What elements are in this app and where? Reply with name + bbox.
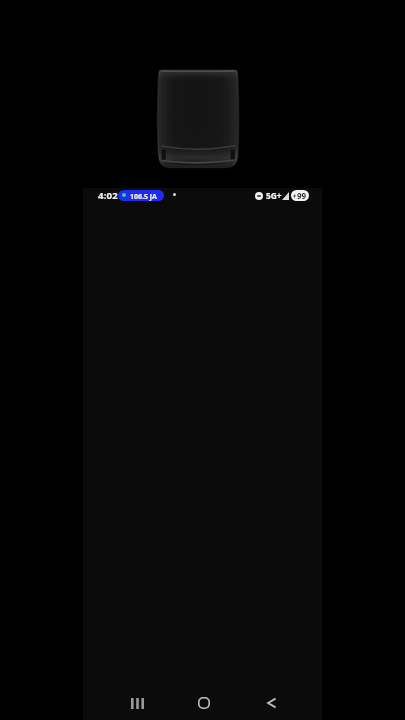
button[interactable]: App content (83, 188, 322, 720)
button[interactable]: Home (187, 686, 221, 720)
other: Do not disturb on (255, 192, 263, 200)
button[interactable]: Back (254, 686, 288, 720)
other: Mobile signal strength (282, 192, 289, 200)
staticText: 99 (297, 190, 307, 201)
staticText: 106.5 JA (130, 192, 157, 201)
other: Battery 99 percent, charging (291, 190, 309, 201)
staticText: 4:02 (98, 189, 118, 202)
button[interactable]: 106.5 JA (118, 190, 164, 201)
staticText: 5G+ (266, 190, 282, 201)
button[interactable]: Recent apps (120, 686, 154, 720)
